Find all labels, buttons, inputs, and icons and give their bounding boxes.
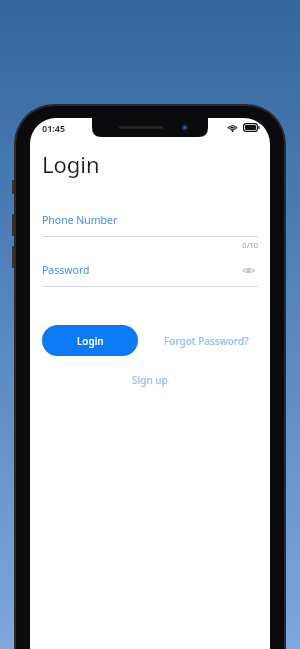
button[interactable]: Forgot Password? [164, 325, 249, 356]
staticText: Password [42, 263, 90, 277]
staticText: Login [42, 149, 100, 179]
staticText: 01:45 [42, 122, 66, 134]
button[interactable]: Sign up [132, 373, 168, 387]
button[interactable]: Password [42, 259, 238, 281]
staticText: 0/10 [42, 240, 258, 250]
button[interactable]: Login [42, 325, 138, 356]
staticText: Login [77, 334, 104, 348]
staticText: Sign up [132, 373, 168, 387]
staticText: Phone Number [42, 213, 118, 227]
staticText: Forgot Password? [164, 334, 249, 348]
button[interactable]: Phone Number [42, 209, 258, 231]
button[interactable]: Show password [238, 260, 258, 280]
